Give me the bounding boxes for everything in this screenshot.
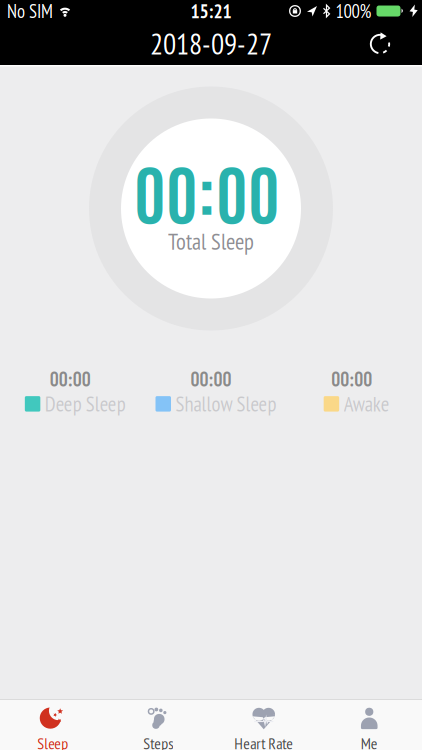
staticText: 00:00 — [134, 149, 280, 233]
staticText: No SIM — [7, 0, 53, 23]
staticText: Sleep — [37, 733, 68, 750]
staticText: Shallow Sleep — [175, 390, 276, 417]
button[interactable]: Sleep — [0, 700, 105, 750]
staticText: 00:00 — [50, 366, 91, 390]
staticText: 00:00 — [331, 366, 372, 390]
staticText: 15:21 — [190, 0, 231, 23]
staticText: Awake — [344, 390, 390, 417]
staticText: 00:00 — [190, 366, 231, 390]
button[interactable]: Me — [316, 700, 422, 750]
staticText: Heart Rate — [234, 733, 293, 750]
button[interactable]: Heart Rate — [211, 700, 316, 750]
staticText: Deep Sleep — [45, 390, 126, 417]
staticText: Steps — [143, 733, 173, 750]
staticText: Me — [361, 733, 378, 750]
button[interactable]: Steps — [105, 700, 211, 750]
staticText: 2018-09-27 — [150, 24, 272, 62]
button[interactable] — [369, 32, 391, 55]
staticText: 100% — [335, 0, 371, 23]
staticText: Total Sleep — [168, 227, 254, 256]
